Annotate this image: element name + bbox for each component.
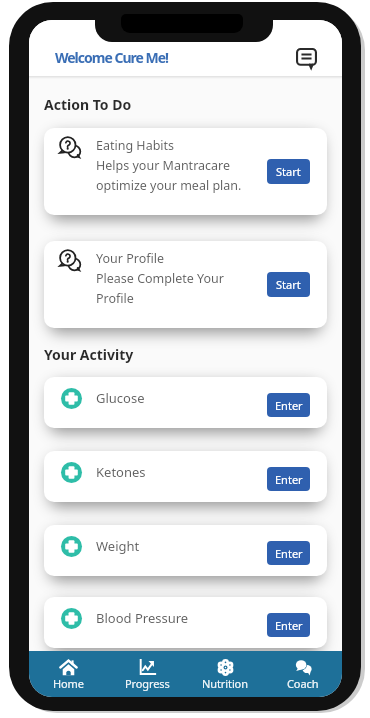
staticText: Action To Do	[44, 95, 132, 114]
button[interactable]: Coach	[264, 651, 342, 697]
button[interactable]: Glucose	[44, 377, 327, 428]
staticText: Please Complete Your	[96, 270, 224, 287]
staticText: Helps your Mantracare	[96, 157, 231, 174]
staticText: Ketones	[96, 463, 146, 481]
staticText: Profile	[96, 290, 134, 307]
staticText: Welcome Cure Me!	[55, 48, 168, 67]
button[interactable]: Eating Habits	[44, 128, 327, 215]
staticText: Start	[276, 277, 301, 292]
staticText: Glucose	[96, 389, 145, 407]
staticText: Your Activity	[44, 345, 134, 364]
button[interactable]: Blood Pressure	[44, 597, 327, 648]
staticText: Enter	[275, 398, 303, 413]
staticText: Blood Pressure	[96, 609, 189, 627]
staticText: Progress	[125, 676, 170, 691]
button[interactable]: Your Profile	[44, 241, 327, 328]
staticText: Start	[276, 164, 301, 179]
staticText: Coach	[287, 676, 319, 691]
button[interactable]: Enter	[267, 613, 310, 637]
staticText: Your Profile	[96, 250, 164, 267]
staticText: Weight	[96, 537, 140, 555]
button[interactable]: Ketones	[44, 451, 327, 502]
staticText: Enter	[275, 546, 303, 561]
staticText: optimize your meal plan.	[96, 177, 242, 194]
button[interactable]: Messages	[296, 48, 317, 69]
staticText: Home	[53, 676, 84, 691]
staticText: Eating Habits	[96, 137, 175, 154]
button[interactable]: Enter	[267, 467, 310, 491]
staticText: Enter	[275, 618, 303, 633]
button[interactable]: Progress	[108, 651, 186, 697]
button[interactable]: Weight	[44, 525, 327, 576]
button[interactable]: Nutrition	[186, 651, 264, 697]
button[interactable]: Enter	[267, 393, 310, 417]
button[interactable]: Start	[267, 159, 310, 184]
button[interactable]: Enter	[267, 541, 310, 565]
button[interactable]: Home	[29, 651, 108, 697]
staticText: Enter	[275, 472, 303, 487]
button[interactable]: Start	[267, 272, 310, 297]
staticText: Nutrition	[202, 676, 248, 691]
